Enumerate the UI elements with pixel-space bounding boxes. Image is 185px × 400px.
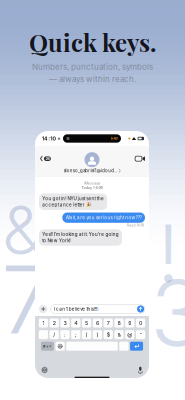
button[interactable]: Send: [137, 305, 144, 313]
button[interactable]: 2: [50, 318, 59, 327]
staticText: — always within reach.: [49, 74, 136, 84]
staticText: &: [117, 331, 120, 338]
button[interactable]: 3: [60, 318, 70, 327]
staticText: 7: [1, 243, 53, 356]
staticText: /: [53, 331, 55, 338]
staticText: 6:40: [110, 136, 117, 141]
button[interactable]: Add attachment: [39, 305, 47, 313]
button[interactable]: 0: [136, 318, 145, 327]
staticText: 3: [150, 258, 185, 368]
button[interactable]: FaceTime video call: [133, 153, 144, 164]
button[interactable]: [66, 342, 118, 351]
staticText: Quick keys.: [29, 26, 156, 58]
button[interactable]: 6: [93, 318, 102, 327]
button[interactable]: -: [39, 330, 48, 339]
button[interactable]: 4: [71, 318, 80, 327]
staticText: ": [140, 331, 142, 338]
button[interactable]: ": [136, 330, 145, 339]
button[interactable]: 8: [114, 318, 124, 327]
button[interactable]: Back: [40, 153, 51, 164]
staticText: I can't believe this!!!: [54, 306, 97, 312]
button[interactable]: ': [119, 342, 128, 351]
button[interactable]: :: [60, 330, 70, 339]
staticText: to New York!!: [42, 238, 71, 243]
button[interactable]: Return: [130, 342, 143, 351]
button[interactable]: 9: [125, 318, 134, 327]
button[interactable]: 7: [104, 318, 113, 327]
staticText: 14:10: [42, 135, 56, 142]
button[interactable]: ;: [71, 330, 80, 339]
staticText: (: [86, 331, 88, 338]
button[interactable]: @: [125, 330, 134, 339]
staticText: You got in! NYU just sent the: [42, 196, 104, 201]
staticText: Numbers, punctuation, symbols: [32, 62, 153, 72]
staticText: alonso_gabriel1@icloud...: [63, 168, 117, 173]
button[interactable]: /: [50, 330, 59, 339]
staticText: 3: [63, 320, 66, 326]
button[interactable]: &: [114, 330, 124, 339]
button[interactable]: 1: [39, 318, 48, 327]
button[interactable]: Dictate: [138, 366, 143, 373]
button[interactable]: (: [82, 330, 91, 339]
staticText: iMessage: [84, 181, 100, 185]
button[interactable]: #+=: [41, 342, 54, 351]
button[interactable]: $: [104, 330, 113, 339]
staticText: Today 14:09: [81, 186, 102, 190]
staticText: ): [96, 331, 98, 338]
staticText: $: [107, 331, 110, 338]
staticText: &: [2, 190, 44, 271]
staticText: 7: [107, 320, 110, 326]
staticText: #+=: [43, 344, 52, 349]
button[interactable]: ): [93, 330, 102, 339]
staticText: Yes!! I'm looking at it. You're going: [42, 232, 119, 237]
staticText: 4: [74, 320, 77, 326]
staticText: 1: [42, 320, 44, 326]
staticText: Read 14:10: [127, 223, 144, 227]
staticText: 5: [85, 320, 88, 326]
button[interactable]: Emoji: [55, 342, 65, 351]
staticText: ;: [75, 331, 77, 338]
staticText: 26: [45, 156, 49, 161]
staticText: 6: [96, 320, 99, 326]
button[interactable]: 5: [82, 318, 91, 327]
staticText: 8: [117, 320, 120, 326]
staticText: 9: [128, 320, 131, 326]
staticText: Wait, are you serious right now???: [65, 215, 142, 220]
staticText: acceptance letter 🎉: [42, 202, 92, 208]
staticText: 2: [53, 320, 56, 326]
button[interactable]: Switch keyboard: [41, 366, 48, 374]
staticText: :: [64, 331, 66, 338]
staticText: @: [127, 331, 132, 338]
staticText: 0: [139, 320, 142, 326]
staticText: !: [157, 205, 180, 302]
